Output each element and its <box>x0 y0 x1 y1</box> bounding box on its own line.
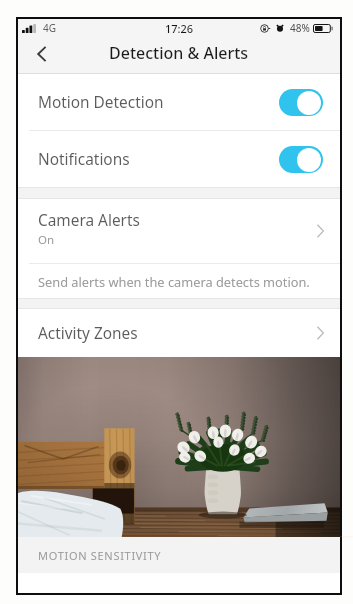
button[interactable]: Motion Detection <box>18 74 340 130</box>
staticText: Motion Detection <box>38 92 164 113</box>
staticText: 48% <box>290 21 310 35</box>
button[interactable]: Back <box>27 39 56 68</box>
staticText: 4G <box>43 21 56 35</box>
staticText: On <box>38 232 55 248</box>
button[interactable]: Notifications <box>18 131 340 187</box>
staticText: Send alerts when the camera detects moti… <box>38 273 310 290</box>
staticText: Notifications <box>38 149 130 170</box>
staticText: MOTION SENSITIVITY <box>38 548 162 563</box>
staticText: Camera Alerts <box>38 210 140 231</box>
button[interactable]: Activity Zones <box>18 309 340 357</box>
staticText: Detection & Alerts <box>109 42 249 64</box>
staticText: Activity Zones <box>38 323 138 344</box>
staticText: 17:26 <box>165 21 194 36</box>
button[interactable]: Camera Alerts <box>18 199 340 263</box>
